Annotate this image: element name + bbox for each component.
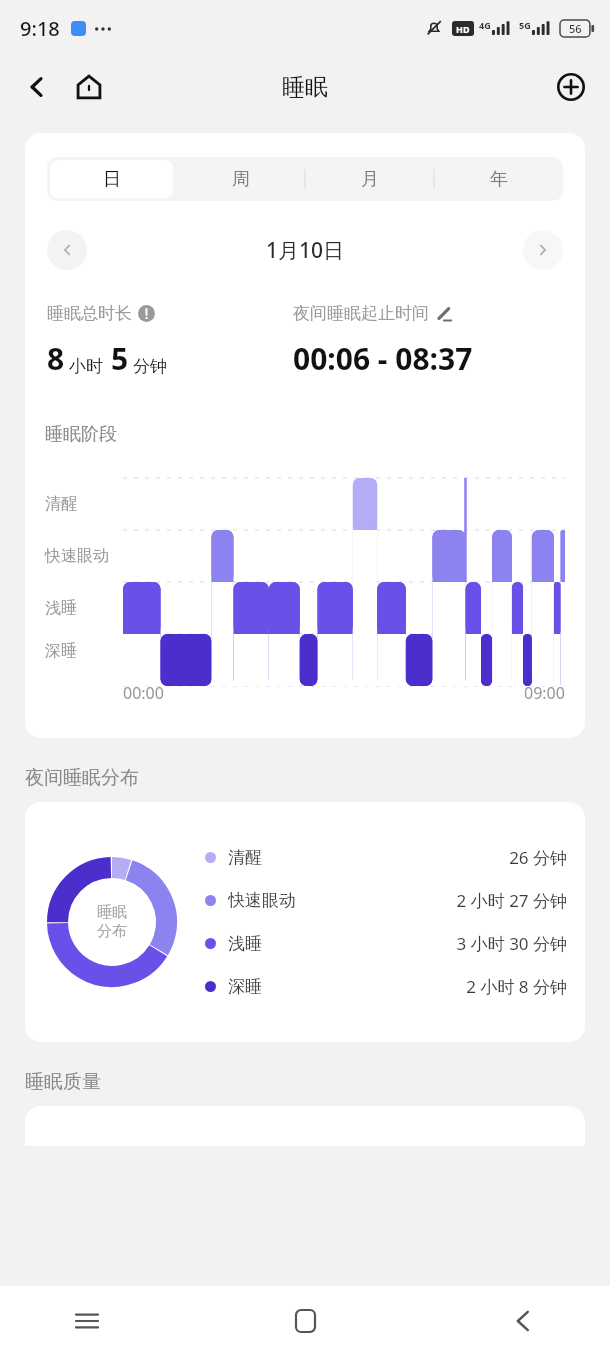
- staticText: 09:00: [524, 682, 565, 704]
- staticText: 睡眠总时长: [47, 303, 132, 324]
- staticText: 睡眠阶段: [45, 423, 117, 446]
- staticText: 年: [490, 168, 508, 191]
- staticText: 清醒: [45, 494, 77, 514]
- button[interactable]: Info: [138, 305, 155, 322]
- button[interactable]: Home: [66, 64, 112, 110]
- staticText: 2 小时 8 分钟: [466, 975, 567, 998]
- button[interactable]: 深睡: [205, 975, 567, 998]
- button[interactable]: Back: [496, 1294, 550, 1348]
- button[interactable]: 清醒: [205, 846, 567, 869]
- button[interactable]: Previous day: [47, 230, 87, 270]
- staticText: 浅睡: [228, 933, 262, 954]
- staticText: 1月10日: [266, 236, 345, 265]
- staticText: HD: [456, 23, 470, 35]
- staticText: 周: [232, 168, 250, 191]
- button[interactable]: Edit: [435, 305, 453, 323]
- staticText: 深睡: [45, 641, 77, 661]
- staticText: 分布: [97, 922, 127, 941]
- button[interactable]: Next day: [523, 230, 563, 270]
- staticText: 56: [569, 21, 582, 36]
- staticText: 浅睡: [45, 598, 77, 618]
- staticText: 睡眠: [282, 73, 328, 102]
- staticText: 00:06 - 08:37: [293, 338, 473, 379]
- staticText: 快速眼动: [228, 890, 296, 911]
- staticText: 深睡: [228, 976, 262, 997]
- staticText: 5G: [519, 19, 531, 31]
- button[interactable]: 日: [50, 160, 173, 198]
- staticText: 26 分钟: [509, 846, 567, 869]
- staticText: 睡眠质量: [25, 1070, 101, 1094]
- staticText: 快速眼动: [45, 546, 109, 566]
- staticText: 夜间睡眠分布: [25, 766, 139, 790]
- button[interactable]: Home: [278, 1294, 332, 1348]
- button[interactable]: Add: [548, 64, 594, 110]
- button[interactable]: 快速眼动: [205, 889, 567, 912]
- button[interactable]: 浅睡: [205, 932, 567, 955]
- staticText: 分钟: [133, 356, 167, 377]
- staticText: 5: [111, 338, 129, 379]
- button[interactable]: 周: [179, 160, 302, 198]
- staticText: 9:18: [20, 15, 60, 42]
- staticText: 月: [361, 168, 379, 191]
- staticText: 睡眠: [97, 903, 127, 922]
- button[interactable]: Recents: [60, 1294, 114, 1348]
- button[interactable]: Back: [14, 64, 60, 110]
- staticText: 8: [47, 338, 65, 379]
- staticText: 00:00: [123, 682, 164, 704]
- staticText: 4G: [479, 19, 491, 31]
- staticText: 夜间睡眠起止时间: [293, 303, 429, 324]
- staticText: 小时: [69, 356, 103, 377]
- button[interactable]: 月: [308, 160, 431, 198]
- staticText: 3 小时 30 分钟: [456, 932, 567, 955]
- button[interactable]: 年: [437, 160, 560, 198]
- staticText: 日: [103, 168, 121, 191]
- staticText: 清醒: [228, 847, 262, 868]
- staticText: 2 小时 27 分钟: [456, 889, 567, 912]
